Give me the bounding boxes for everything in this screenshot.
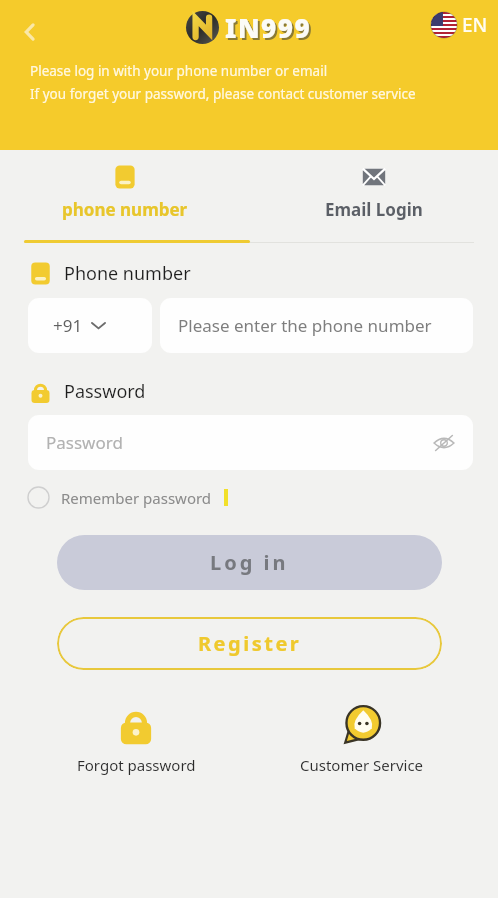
staticText: Password	[46, 431, 123, 454]
staticText: +91	[53, 314, 83, 337]
button[interactable]: Email Login	[249, 150, 498, 243]
staticText: Log in	[210, 549, 289, 576]
staticText: If you forget your password, please cont…	[30, 85, 416, 103]
staticText: Password	[64, 379, 146, 404]
button[interactable]: Show password	[429, 428, 459, 458]
staticText: Phone number	[64, 261, 191, 286]
button[interactable]: Please enter the phone number	[160, 298, 473, 353]
button[interactable]: Customer Service	[272, 704, 452, 775]
staticText: Please enter the phone number	[178, 314, 432, 337]
staticText: IN999	[227, 12, 314, 47]
staticText: EN	[462, 12, 488, 38]
button[interactable]: Password	[28, 415, 473, 470]
button[interactable]: phone number	[0, 150, 249, 243]
button[interactable]: Remember password	[27, 486, 498, 509]
button[interactable]: Register	[57, 617, 442, 670]
staticText: Email Login	[325, 198, 423, 221]
staticText: Register	[198, 630, 302, 657]
button[interactable]: Back	[8, 10, 52, 54]
button[interactable]: Forgot password	[46, 704, 226, 775]
staticText: phone number	[62, 198, 188, 221]
button[interactable]: Log in	[57, 535, 442, 590]
button[interactable]: +91	[28, 298, 152, 353]
staticText: Customer Service	[300, 755, 424, 775]
staticText: Please log in with your phone number or …	[30, 62, 328, 80]
staticText: Forgot password	[77, 755, 196, 775]
button[interactable]: EN	[431, 12, 488, 38]
staticText: IN999	[225, 10, 312, 45]
staticText: Remember password	[61, 488, 212, 508]
